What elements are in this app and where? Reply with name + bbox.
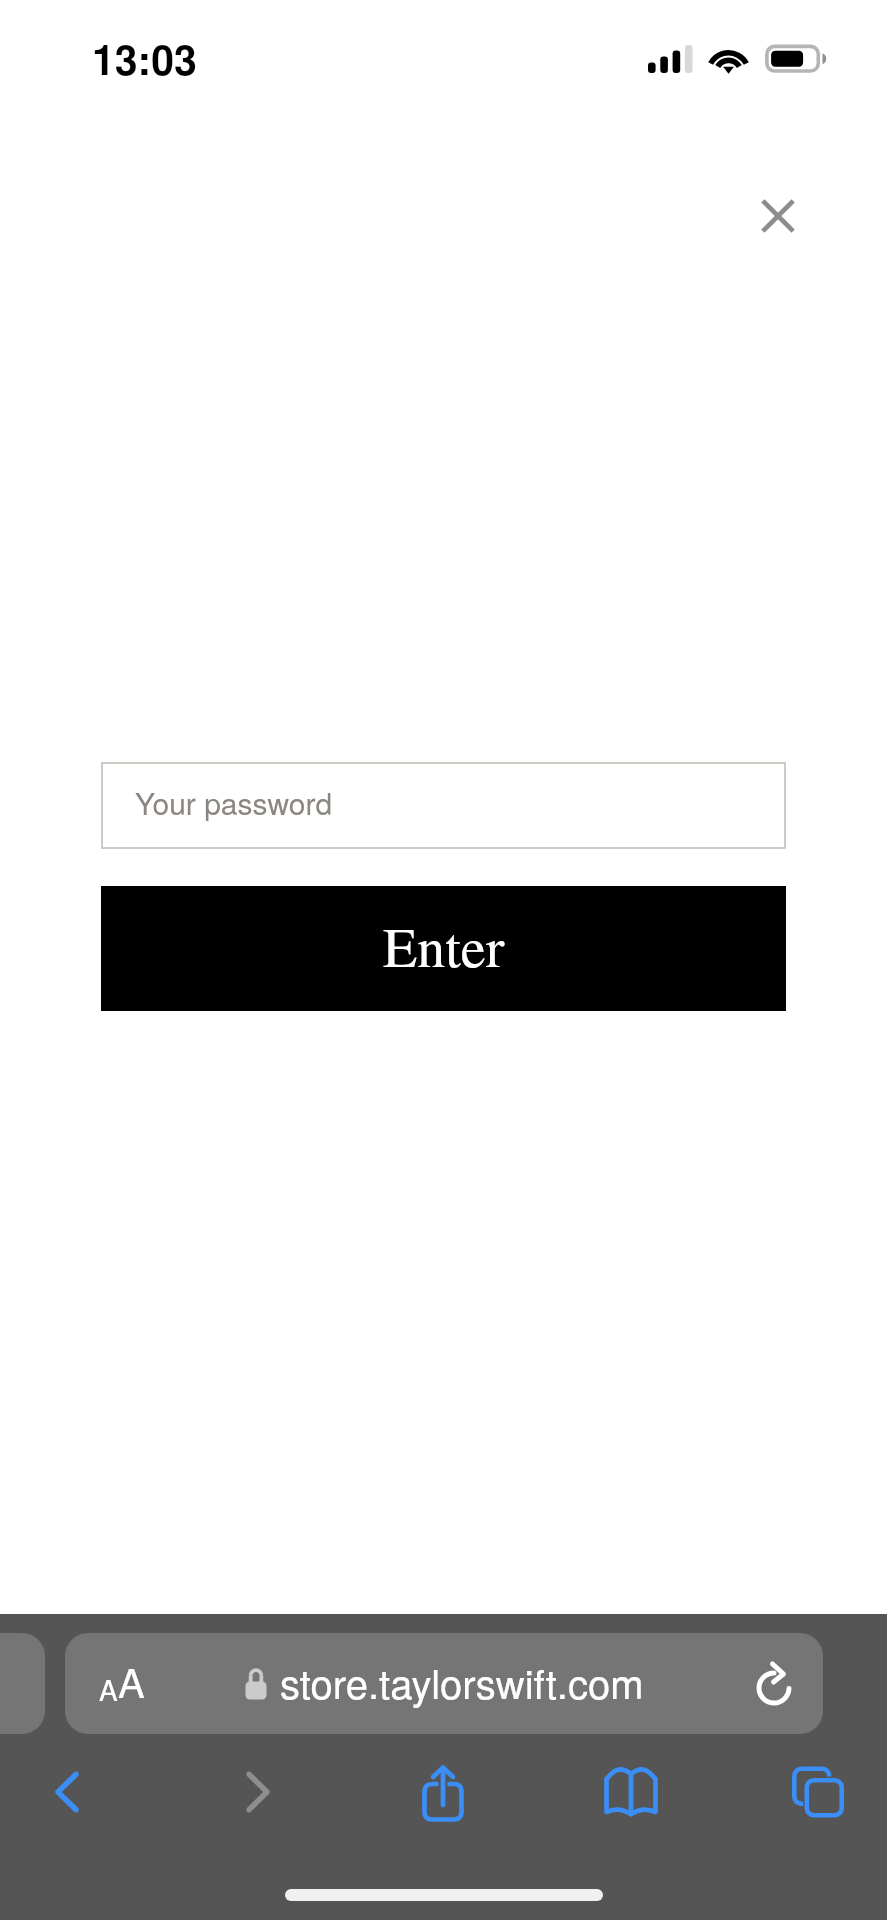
staticText: A [118,1652,145,1709]
button[interactable]: A [99,1652,145,1709]
button[interactable]: Forward [218,1752,298,1832]
button[interactable]: Share [403,1752,483,1832]
staticText: A [99,1669,118,1709]
button[interactable]: Your password [101,762,786,849]
staticText: 13:03 [92,29,197,88]
button[interactable]: A [65,1633,823,1734]
button[interactable]: Tabs [778,1752,858,1832]
staticText: store.taylorswift.com [280,1653,644,1710]
staticText: Your password [135,781,333,824]
button[interactable]: Close [738,176,818,256]
button[interactable]: Enter [101,886,786,1011]
button[interactable]: Reload [739,1649,809,1719]
button[interactable]: Bookmarks [591,1752,671,1832]
button[interactable]: Back [27,1752,107,1832]
staticText: Enter [383,908,505,983]
